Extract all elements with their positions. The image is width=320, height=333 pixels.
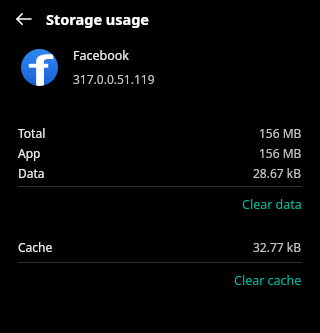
staticText: Data (18, 165, 45, 181)
button[interactable]: Facebook (0, 38, 320, 96)
staticText: 28.67 kB (253, 165, 302, 181)
staticText: 156 MB (259, 145, 302, 161)
staticText: Storage usage (46, 9, 150, 29)
staticText: 317.0.0.51.119 (73, 71, 155, 87)
staticText: Facebook (73, 47, 130, 64)
staticText: Clear data (242, 196, 302, 213)
staticText: 156 MB (259, 125, 302, 141)
button[interactable]: Clear data (0, 187, 320, 222)
staticText: App (18, 145, 41, 161)
button[interactable]: App (0, 143, 320, 163)
button[interactable]: Total (0, 123, 320, 143)
button[interactable]: Back (8, 3, 40, 35)
staticText: Clear cache (234, 272, 302, 289)
staticText: Total (18, 125, 46, 141)
staticText: Cache (18, 239, 53, 255)
button[interactable]: Clear cache (0, 263, 320, 298)
button[interactable]: Data (0, 163, 320, 183)
staticText: 32.77 kB (253, 239, 302, 255)
button[interactable]: Cache (0, 237, 320, 257)
